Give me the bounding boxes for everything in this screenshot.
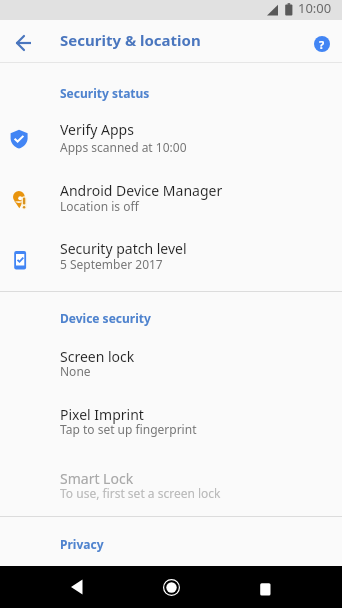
button[interactable]: Screen lock [0, 342, 342, 400]
staticText: Smart Lock [60, 469, 134, 488]
staticText: ? [319, 37, 325, 52]
staticText: Device security [60, 310, 151, 326]
button[interactable]: Security patch level [0, 234, 342, 292]
button[interactable]: ? [305, 30, 338, 58]
staticText: Security & location [60, 30, 201, 50]
button[interactable]: Pixel Imprint [0, 400, 342, 458]
staticText: Android Device Manager [60, 181, 223, 200]
staticText: Tap to set up fingerprint [60, 421, 197, 437]
staticText: Security patch level [60, 239, 187, 258]
button[interactable] [151, 568, 191, 606]
staticText: Screen lock [60, 347, 135, 366]
staticText: To use, first set a screen lock [60, 485, 221, 501]
staticText: None [60, 363, 91, 379]
button[interactable]: Verify Apps [0, 114, 342, 174]
staticText: Location is off [60, 198, 139, 214]
button[interactable] [245, 570, 285, 608]
button[interactable]: Android Device Manager [0, 176, 342, 234]
button[interactable] [8, 27, 40, 59]
staticText: Apps scanned at 10:00 [60, 139, 187, 155]
staticText: Verify Apps [60, 120, 134, 139]
staticText: Pixel Imprint [60, 405, 144, 424]
staticText: 5 September 2017 [60, 256, 163, 272]
staticText: 10:00 [298, 0, 332, 17]
button[interactable] [57, 568, 97, 606]
button[interactable]: Smart Lock [0, 464, 342, 522]
staticText: Security status [60, 85, 150, 101]
staticText: Privacy [60, 536, 104, 552]
